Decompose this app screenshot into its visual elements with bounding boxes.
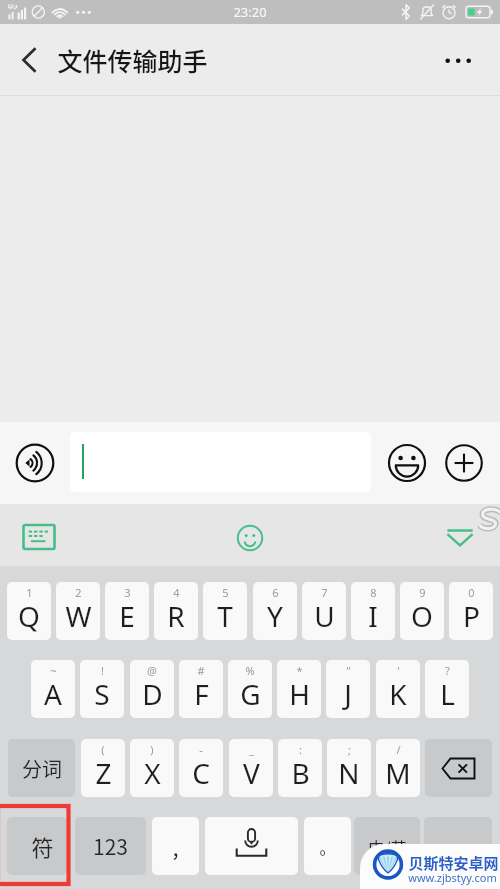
staticText: " [346, 663, 351, 678]
staticText: : [299, 742, 302, 757]
staticText: W [65, 597, 92, 635]
button[interactable]: 。 [304, 817, 351, 875]
staticText: - [199, 742, 203, 757]
staticText: ! [101, 663, 104, 678]
button[interactable]: ' [376, 660, 420, 718]
staticText: G [240, 675, 261, 713]
staticText: ; [348, 742, 351, 757]
button[interactable] [424, 817, 492, 875]
staticText: 2 [75, 585, 82, 600]
staticText: D [142, 675, 163, 713]
button[interactable]: More functions [440, 439, 488, 487]
staticText: U [314, 597, 335, 635]
button[interactable]: / [376, 739, 420, 797]
staticText: ~ [50, 663, 57, 678]
staticText: % [245, 663, 255, 678]
button[interactable]: Space [205, 817, 298, 875]
staticText: ? [445, 663, 450, 678]
staticText: 8 [370, 585, 377, 600]
button[interactable]: 7 [302, 582, 346, 640]
button[interactable]: 5 [203, 582, 247, 640]
button[interactable]: ! [80, 660, 124, 718]
staticText: K [389, 675, 407, 713]
staticText: B [291, 754, 310, 792]
staticText: 中/英 [368, 835, 407, 858]
staticText: Z [95, 754, 112, 792]
staticText: L [440, 675, 455, 713]
staticText: , [172, 830, 179, 862]
button[interactable]: 中/英 [354, 817, 420, 875]
staticText: C [192, 754, 210, 792]
staticText: 1 [26, 585, 33, 600]
button[interactable]: Emoji panel [226, 514, 274, 562]
staticText: F [194, 675, 209, 713]
button[interactable]: ) [130, 739, 174, 797]
staticText: 23:20 [233, 3, 267, 21]
button[interactable]: - [179, 739, 223, 797]
staticText: ( [101, 742, 105, 757]
staticText: 文件传输助手 [57, 42, 208, 78]
staticText: 分词 [22, 754, 62, 783]
staticText: O [411, 597, 433, 635]
staticText: 9 [419, 585, 426, 600]
staticText: H [289, 675, 310, 713]
staticText: T [217, 597, 233, 635]
staticText: P [463, 597, 480, 635]
staticText: E [119, 597, 135, 635]
staticText: M [385, 754, 411, 792]
button[interactable]: @ [130, 660, 174, 718]
button[interactable]: 4 [154, 582, 198, 640]
staticText: www.zjbstyy.com [408, 870, 497, 885]
button[interactable]: 3 [105, 582, 149, 640]
staticText: 3 [124, 585, 131, 600]
staticText: 4 [173, 585, 180, 600]
staticText: X [144, 754, 161, 792]
staticText: ) [150, 742, 154, 757]
button[interactable]: ~ [31, 660, 75, 718]
staticText: 0 [468, 585, 475, 600]
staticText: N [338, 754, 360, 792]
button[interactable]: 分词 [8, 739, 75, 797]
button[interactable]: Backspace [425, 739, 492, 797]
staticText: 符 [31, 830, 54, 862]
button[interactable]: 9 [400, 582, 444, 640]
staticText: _ [249, 742, 254, 757]
button[interactable]: ; [327, 739, 371, 797]
button[interactable]: Emoji [383, 439, 431, 487]
button[interactable]: 符 [7, 817, 67, 875]
button[interactable]: ? [425, 660, 469, 718]
button[interactable]: % [228, 660, 272, 718]
button[interactable]: " [326, 660, 370, 718]
button[interactable]: 8 [351, 582, 395, 640]
button[interactable]: Keyboard layout [15, 513, 63, 561]
button[interactable]: ( [81, 739, 125, 797]
button[interactable]: , [152, 817, 199, 875]
staticText: 5 [222, 585, 229, 600]
staticText: Y [267, 597, 283, 635]
staticText: / [396, 742, 401, 757]
button[interactable]: * [277, 660, 321, 718]
button[interactable]: 2 [56, 582, 100, 640]
button[interactable]: 123 [75, 817, 146, 875]
button[interactable]: Voice input [11, 439, 59, 487]
staticText: 6 [272, 585, 279, 600]
staticText: * [296, 663, 303, 678]
button[interactable]: _ [229, 739, 273, 797]
staticText: @ [147, 663, 157, 678]
button[interactable]: 0 [449, 582, 493, 640]
button[interactable]: More options [434, 36, 482, 84]
staticText: 贝斯特安卓网 [408, 852, 499, 874]
staticText: # [197, 663, 205, 678]
staticText: 123 [93, 831, 128, 861]
button[interactable]: Hide keyboard [436, 513, 484, 561]
staticText: I [368, 597, 378, 635]
button[interactable]: 6 [253, 582, 297, 640]
button[interactable] [70, 432, 371, 492]
staticText: S [94, 675, 110, 713]
button[interactable]: 1 [7, 582, 51, 640]
button[interactable]: Back [4, 36, 52, 84]
button[interactable]: : [278, 739, 322, 797]
staticText: J [344, 675, 352, 713]
button[interactable]: # [179, 660, 223, 718]
staticText: R [167, 597, 185, 635]
